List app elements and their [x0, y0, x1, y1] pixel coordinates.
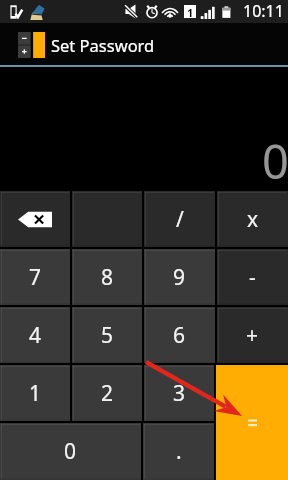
staticText: 8 [101, 263, 114, 292]
staticText: Set Password [51, 34, 155, 56]
button[interactable]: Set Password [18, 32, 161, 58]
staticText: 7 [29, 263, 42, 292]
button[interactable]: Backspace [0, 191, 70, 247]
button[interactable]: 0 [0, 423, 141, 480]
button[interactable]: + [217, 307, 288, 363]
staticText: 4 [29, 321, 42, 350]
staticText: 6 [173, 321, 186, 350]
button[interactable]: 9 [144, 249, 215, 305]
button[interactable]: / [144, 191, 215, 247]
button[interactable]: 4 [0, 307, 70, 363]
staticText: 5 [101, 321, 114, 350]
button[interactable]: . [143, 423, 214, 480]
button[interactable]: 1 [0, 365, 70, 421]
button[interactable]: 8 [72, 249, 142, 305]
staticText: . [176, 437, 182, 466]
staticText: 1 [187, 5, 194, 18]
button[interactable]: Equals [216, 365, 288, 480]
staticText: x [247, 205, 259, 234]
staticText: 1 [29, 379, 42, 408]
staticText: 2 [101, 379, 114, 408]
staticText: - [249, 263, 256, 292]
button[interactable]: - [217, 249, 288, 305]
button[interactable]: 6 [144, 307, 215, 363]
staticText: 3 [173, 379, 186, 408]
staticText: + [246, 321, 259, 350]
button[interactable]: 2 [72, 365, 142, 421]
staticText: 0 [262, 129, 288, 193]
staticText: 0 [64, 437, 77, 466]
button[interactable]: 7 [0, 249, 70, 305]
staticText: 9 [173, 263, 186, 292]
button[interactable]: 3 [144, 365, 214, 421]
staticText: 10:11 [243, 0, 284, 22]
button[interactable]: 5 [72, 307, 142, 363]
button[interactable]: x [217, 191, 288, 247]
staticText: / [176, 205, 184, 234]
